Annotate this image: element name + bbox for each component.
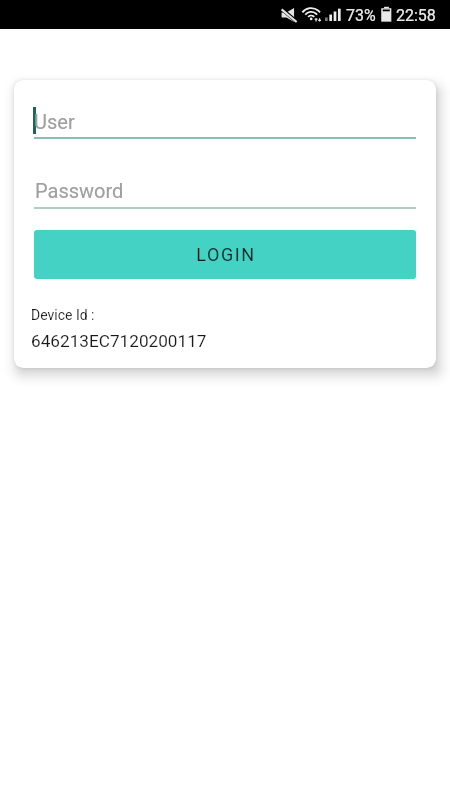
staticText: LOGIN — [196, 244, 256, 265]
button[interactable]: LOGIN — [34, 230, 416, 279]
staticText: 22:58 — [396, 6, 436, 25]
other: Battery 73 percent — [381, 6, 392, 22]
button[interactable]: User — [34, 106, 416, 140]
staticText: Device Id : — [31, 307, 95, 323]
staticText: Password — [35, 179, 124, 202]
button[interactable]: Password — [34, 176, 416, 209]
other: Ringer muted — [280, 8, 296, 22]
staticText: 646213EC7120200117 — [31, 331, 207, 351]
staticText: User — [34, 110, 75, 133]
other: Wi-Fi connected — [303, 7, 322, 21]
staticText: 73% — [346, 6, 376, 25]
other: Mobile signal — [325, 7, 341, 21]
